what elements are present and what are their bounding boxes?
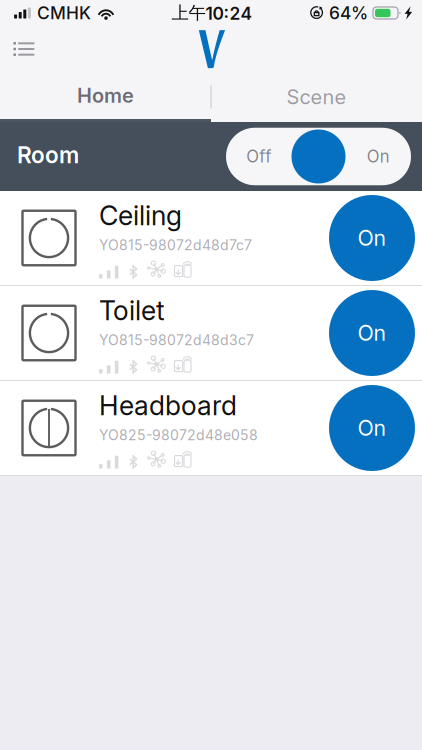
staticText: Scene <box>286 85 346 109</box>
staticText: On <box>367 146 390 167</box>
button[interactable]: Headboard <box>0 381 422 475</box>
staticText: CMHK <box>37 2 91 23</box>
staticText: YO825-98072d48e058 <box>99 427 258 444</box>
staticText: 上午10:24 <box>171 2 252 24</box>
button[interactable]: Toilet <box>0 286 422 380</box>
staticText: Room <box>17 141 79 169</box>
staticText: 64% <box>329 2 368 23</box>
staticText: Headboard <box>99 389 237 422</box>
staticText: YO815-98072d48d7c7 <box>99 237 252 254</box>
staticText: YO815-98072d48d3c7 <box>99 332 254 349</box>
button[interactable]: Home <box>0 72 211 122</box>
staticText: Home <box>77 83 134 108</box>
button[interactable]: Off <box>226 128 411 185</box>
staticText: On <box>357 225 386 251</box>
staticText: Ceiling <box>99 199 182 232</box>
button[interactable]: Scene <box>211 72 422 122</box>
staticText: On <box>357 415 386 441</box>
staticText: Toilet <box>99 294 165 327</box>
button[interactable]: Menu <box>1 29 47 69</box>
button[interactable]: Ceiling <box>0 191 422 285</box>
staticText: On <box>357 320 386 346</box>
staticText: Off <box>246 146 271 167</box>
